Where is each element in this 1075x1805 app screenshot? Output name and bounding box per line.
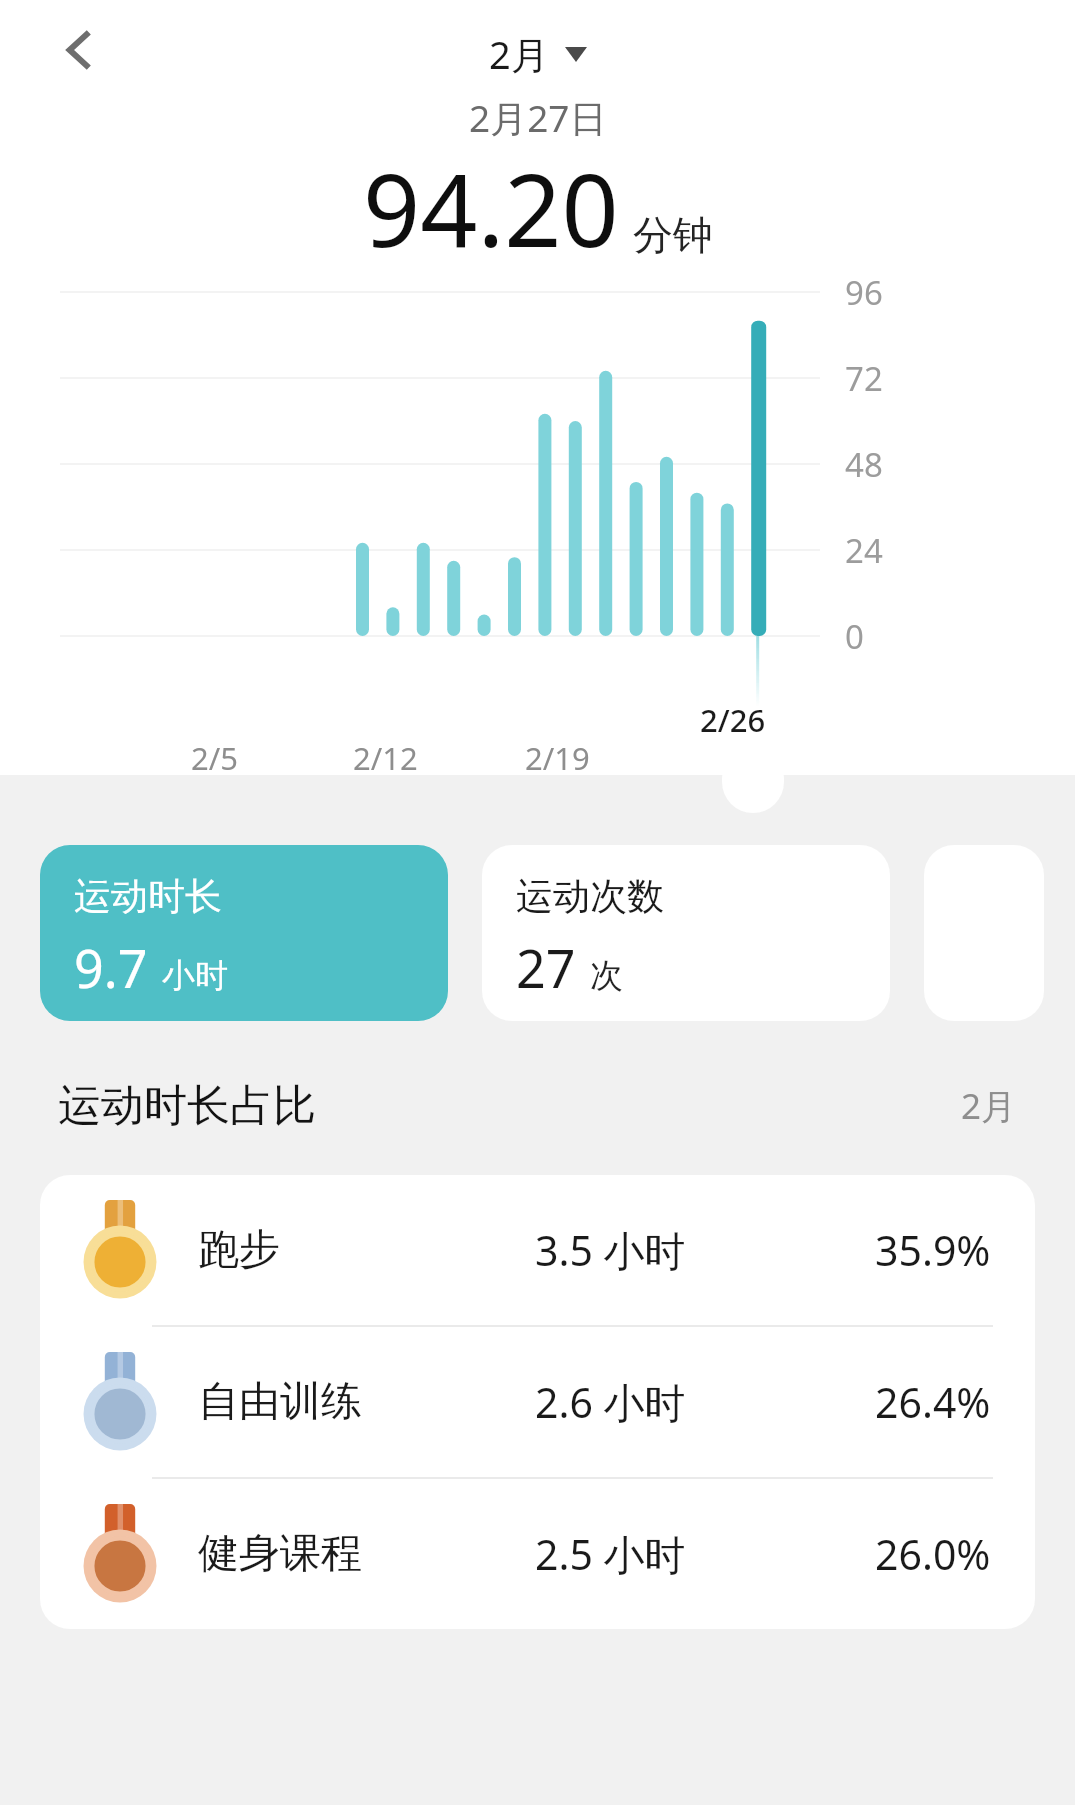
button[interactable]: Back: [42, 12, 118, 88]
staticText: 2.6 小时: [535, 1374, 686, 1430]
staticText: 27: [516, 932, 576, 1003]
staticText: 2/26: [700, 699, 766, 741]
staticText: 3.5 小时: [535, 1222, 686, 1278]
staticText: 次: [590, 955, 623, 997]
button[interactable]: 运动次数: [482, 845, 890, 1021]
staticText: 2月27日: [469, 92, 607, 143]
staticText: 35.9%: [875, 1222, 991, 1278]
staticText: 运动次数: [516, 873, 664, 920]
staticText: 96: [845, 270, 883, 315]
staticText: 小时: [162, 955, 228, 997]
staticText: 跑步: [198, 1224, 280, 1276]
staticText: 运动时长: [74, 873, 222, 920]
staticText: 分钟: [633, 210, 713, 260]
staticText: 2/5: [191, 737, 238, 779]
staticText: 2.5 小时: [535, 1526, 686, 1582]
staticText: 48: [845, 442, 883, 487]
staticText: 2月: [961, 1082, 1017, 1130]
staticText: 0: [845, 614, 864, 659]
staticText: 26.0%: [875, 1526, 991, 1582]
staticText: 健身课程: [198, 1528, 362, 1580]
button[interactable]: 跑步: [40, 1175, 1035, 1325]
staticText: 运动时长占比: [58, 1079, 316, 1133]
staticText: 2/19: [525, 737, 590, 779]
staticText: 26.4%: [875, 1374, 991, 1430]
button[interactable]: 2月: [477, 22, 599, 86]
button[interactable]: 健身课程: [40, 1479, 1035, 1629]
staticText: 2月: [489, 28, 549, 80]
staticText: 2/12: [353, 737, 418, 779]
staticText: 自由训练: [198, 1376, 362, 1428]
staticText: 94.20: [363, 140, 619, 276]
staticText: 24: [845, 528, 883, 573]
button[interactable]: 运动时长: [40, 845, 448, 1021]
staticText: 72: [845, 356, 883, 401]
button[interactable]: Drag handle: [722, 747, 784, 813]
staticText: 9.7: [74, 932, 148, 1003]
button[interactable]: 自由训练: [40, 1327, 1035, 1477]
